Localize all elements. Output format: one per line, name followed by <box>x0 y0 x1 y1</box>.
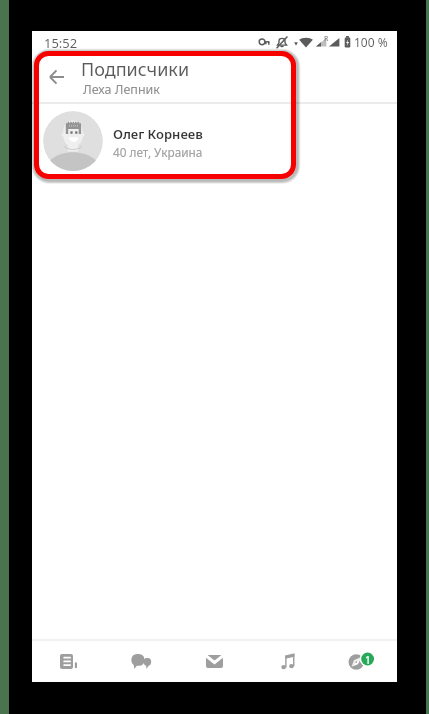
staticText: 100 % <box>354 34 388 50</box>
staticText: 15:52 <box>44 34 78 52</box>
staticText: 40 лет, Украина <box>113 144 203 160</box>
button[interactable]: News <box>32 641 105 682</box>
button[interactable]: Discover <box>324 641 397 682</box>
button[interactable]: Олег Корнеев <box>32 103 397 179</box>
staticText: R <box>324 34 329 44</box>
button[interactable]: Back <box>35 55 78 98</box>
staticText: Подписчики <box>81 57 190 82</box>
staticText: 1 <box>365 653 371 666</box>
staticText: Олег Корнеев <box>113 125 203 143</box>
button[interactable]: Chats <box>105 641 178 682</box>
staticText: Леха Лепник <box>83 81 160 98</box>
button[interactable]: Mail <box>178 641 251 682</box>
button[interactable]: Music <box>251 641 324 682</box>
